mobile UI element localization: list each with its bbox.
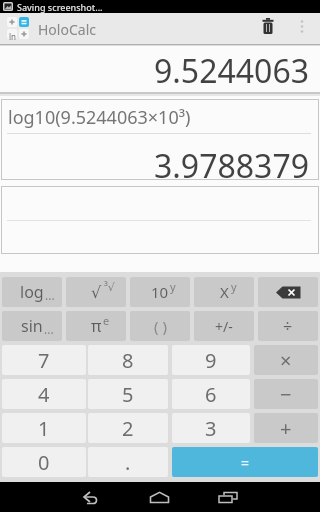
button[interactable]: × [254,345,318,375]
button[interactable]: +/- [194,311,254,341]
staticText: 2 [122,415,134,442]
staticText: × [280,347,292,374]
staticText: − [280,381,292,408]
staticText: 10 [151,282,169,302]
button[interactable]: log [2,277,62,307]
button[interactable] [145,482,175,510]
staticText: ... [44,321,54,337]
staticText: log [20,281,44,303]
button[interactable]: ÷ [258,311,318,341]
button[interactable]: ( ) [130,311,190,341]
button[interactable] [292,14,320,44]
staticText: e [103,313,110,328]
staticText: 3 [205,415,217,442]
button[interactable]: 5 [88,379,168,409]
staticText: log10(9.5244063×10³) [8,105,191,130]
staticText: y [170,279,176,294]
button[interactable]: 4 [2,379,86,409]
staticText: . [125,449,131,476]
button[interactable]: 1 [2,413,86,443]
staticText: Saving screenshot... [17,1,103,13]
staticText: ( ) [154,316,167,336]
button[interactable]: = [172,447,318,477]
staticText: = [241,453,250,472]
button[interactable]: 0 [2,447,86,477]
button[interactable]: 6 [172,379,250,409]
button[interactable]: 7 [2,345,86,375]
button[interactable]: + [254,413,318,443]
staticText: ÷ [283,315,293,337]
staticText: 7 [38,347,50,374]
staticText: HoloCalc [38,20,96,39]
staticText: X [220,282,229,302]
button[interactable]: 8 [88,345,168,375]
staticText: y [231,279,237,294]
staticText: 0 [38,449,50,476]
button[interactable]: − [254,379,318,409]
staticText: ³√ [104,279,115,294]
button[interactable]: sin [2,311,62,341]
staticText: 8 [122,347,134,374]
button[interactable]: 10 [130,277,190,307]
button[interactable]: √ [66,277,126,307]
button[interactable]: . [88,447,168,477]
button[interactable] [254,14,284,44]
button[interactable]: X [194,277,254,307]
staticText: 6 [205,381,217,408]
button[interactable]: π [66,311,126,341]
button[interactable] [76,482,106,510]
staticText: 9 [205,347,217,374]
staticText: √ [91,283,102,302]
staticText: 1 [38,415,50,442]
staticText: sin [21,315,43,337]
button[interactable] [214,482,244,510]
button[interactable] [258,277,318,307]
staticText: 9.5244063 [0,49,309,93]
button[interactable]: 3 [172,413,250,443]
staticText: ln [9,31,17,42]
staticText: 4 [38,381,50,408]
button[interactable]: 9 [172,345,250,375]
staticText: π [91,315,102,337]
button[interactable]: 2 [88,413,168,443]
staticText: +/- [215,317,233,336]
staticText: + [280,415,292,442]
staticText: ... [45,287,55,303]
staticText: 5 [122,381,134,408]
staticText: 3.9788379 [1,144,309,188]
